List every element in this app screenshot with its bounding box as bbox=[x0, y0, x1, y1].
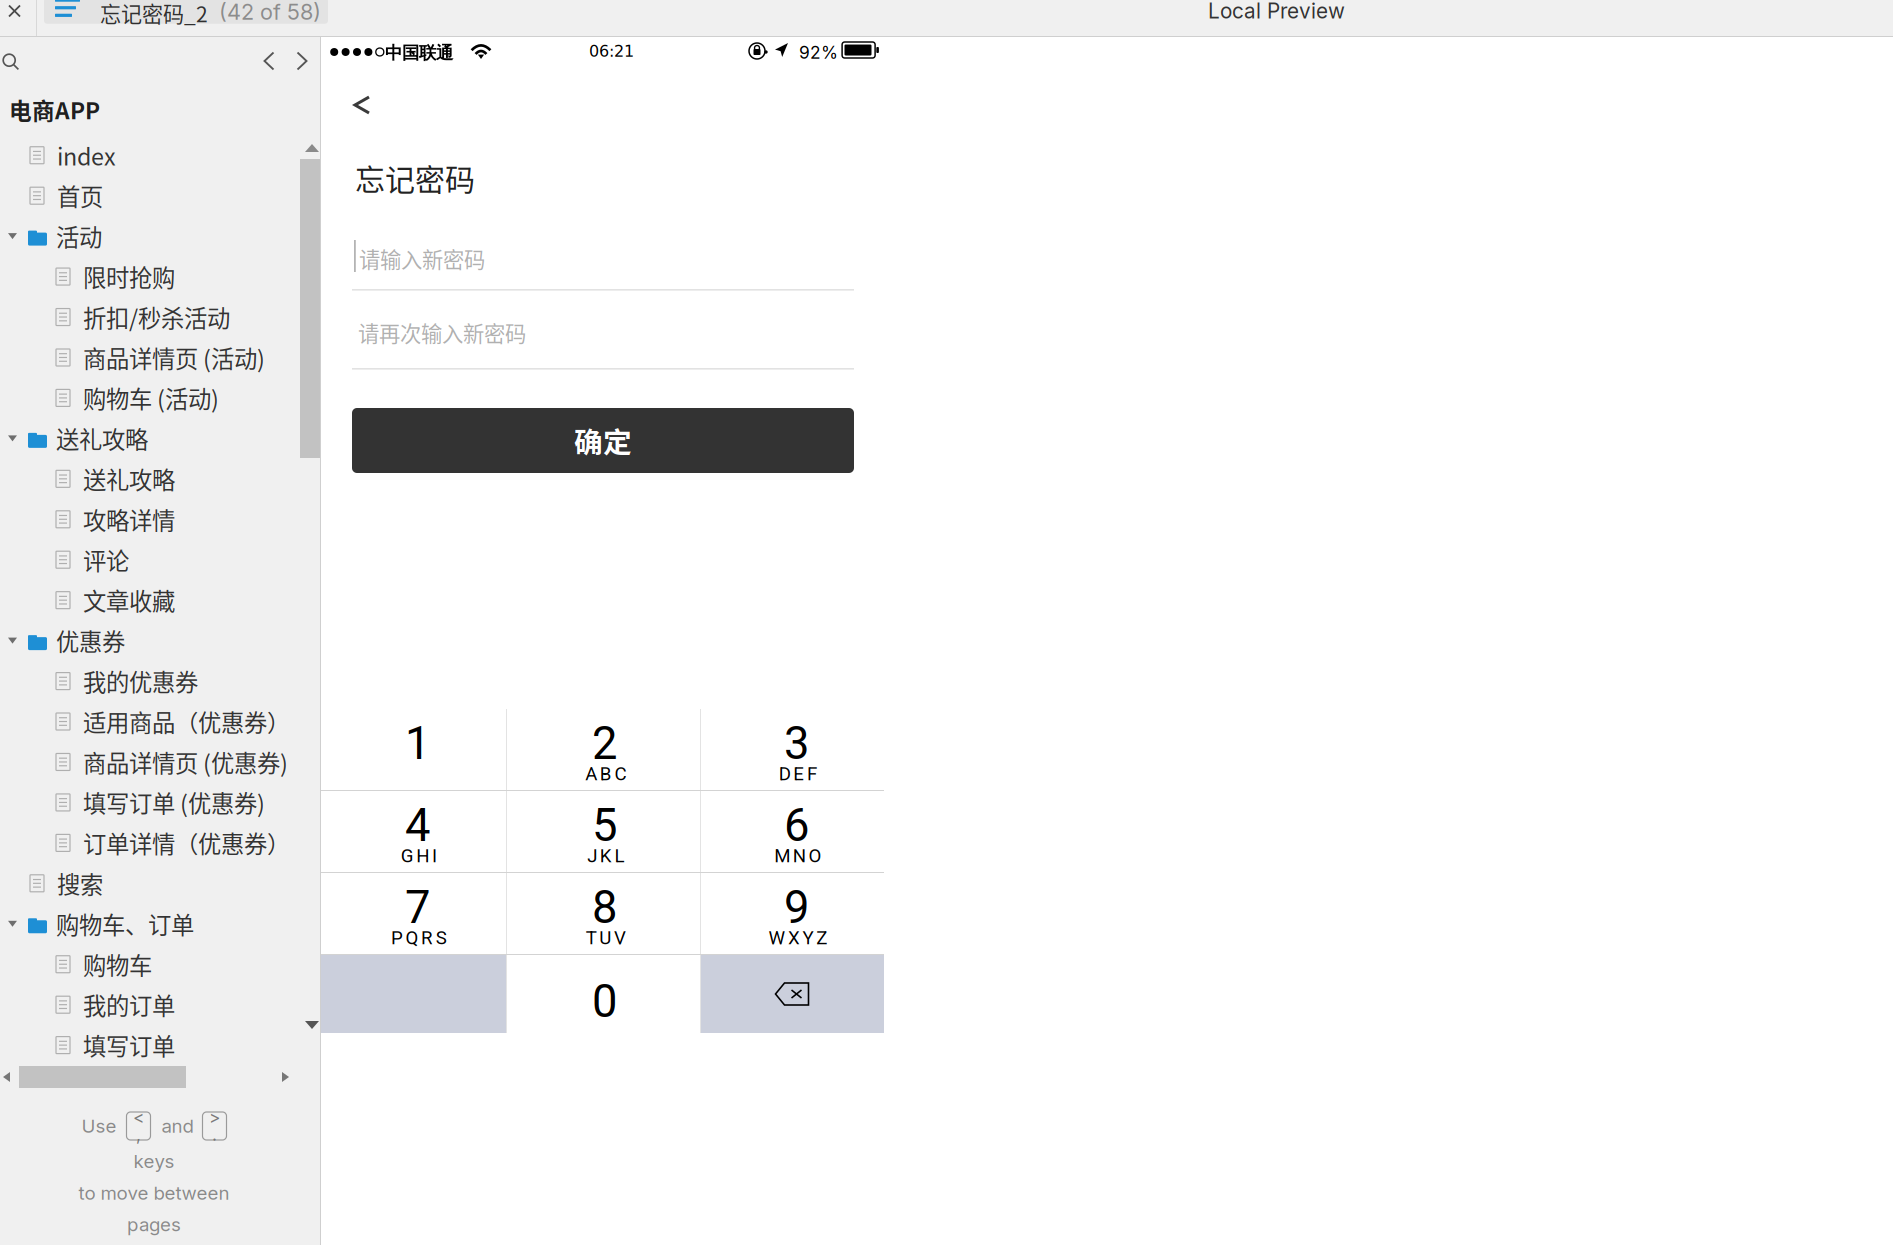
button[interactable]: 首页 bbox=[0, 175, 320, 216]
staticText: 攻略详情 bbox=[83, 502, 175, 536]
staticText: 确定 bbox=[574, 420, 632, 461]
staticText: > bbox=[209, 1107, 220, 1128]
button[interactable]: 限时抢购 bbox=[0, 256, 320, 297]
button[interactable]: 送礼攻略 bbox=[0, 418, 320, 459]
button[interactable]: 活动 bbox=[0, 216, 320, 256]
button[interactable]: 4 bbox=[321, 791, 506, 872]
staticText: 6 bbox=[784, 799, 809, 852]
staticText: 商品详情页 (优惠券) bbox=[83, 745, 288, 779]
staticText: 适用商品（优惠券） bbox=[83, 705, 290, 738]
button[interactable]: 5 bbox=[507, 791, 700, 872]
button[interactable]: Back bbox=[334, 82, 390, 128]
button[interactable]: Search bbox=[0, 46, 27, 78]
staticText: 请输入新密码 bbox=[359, 243, 485, 274]
staticText: , bbox=[136, 1124, 141, 1145]
button[interactable]: Delete bbox=[701, 955, 884, 1033]
staticText: ABC bbox=[585, 763, 626, 785]
button[interactable]: 购物车 (活动) bbox=[0, 378, 320, 418]
button[interactable]: 优惠券 bbox=[0, 620, 320, 661]
button[interactable]: 攻略详情 bbox=[0, 499, 320, 539]
staticText: 5 bbox=[592, 799, 617, 852]
staticText: 3 bbox=[784, 717, 809, 770]
staticText: (42 of 58) bbox=[219, 0, 321, 25]
button[interactable]: Close bbox=[0, 0, 29, 22]
staticText: 送礼攻略 bbox=[83, 462, 175, 496]
staticText: 06:21 bbox=[589, 42, 634, 61]
staticText: 8 bbox=[592, 881, 617, 934]
button[interactable]: 填写订单 (优惠券) bbox=[0, 782, 320, 823]
button[interactable]: 送礼攻略 bbox=[0, 459, 320, 499]
staticText: 购物车 bbox=[83, 947, 152, 981]
staticText: 2 bbox=[592, 717, 617, 770]
staticText: . bbox=[212, 1124, 217, 1145]
staticText: keys bbox=[133, 1150, 174, 1173]
button[interactable]: 搜索 bbox=[0, 863, 320, 904]
button[interactable]: 2 bbox=[507, 709, 700, 790]
staticText: 我的订单 bbox=[83, 988, 175, 1022]
staticText: 商品详情页 (活动) bbox=[83, 341, 265, 374]
button[interactable]: 0 bbox=[507, 955, 700, 1033]
button[interactable]: 我的订单 bbox=[0, 984, 320, 1025]
staticText: 购物车 (活动) bbox=[83, 381, 219, 415]
button[interactable]: 适用商品（优惠券） bbox=[0, 701, 320, 742]
staticText: TUV bbox=[586, 927, 626, 949]
staticText: WXYZ bbox=[768, 927, 827, 949]
button[interactable]: 6 bbox=[701, 791, 884, 872]
staticText: DEF bbox=[779, 763, 817, 785]
staticText: 忘记密码 bbox=[355, 156, 475, 199]
button[interactable]: 我的优惠券 bbox=[0, 661, 320, 701]
staticText: 1 bbox=[405, 717, 430, 770]
button[interactable]: 评论 bbox=[0, 539, 320, 580]
staticText: 中国联通 bbox=[385, 42, 453, 64]
button[interactable]: 购物车 bbox=[0, 944, 320, 984]
button[interactable]: index bbox=[0, 135, 320, 175]
button[interactable]: 3 bbox=[701, 709, 884, 790]
button[interactable]: 确定 bbox=[352, 408, 854, 473]
button[interactable]: Previous page bbox=[255, 46, 283, 76]
button[interactable]: 订单详情（优惠券） bbox=[0, 823, 320, 863]
button[interactable]: 忘记密码_2 bbox=[44, 0, 328, 26]
staticText: 填写订单 (优惠券) bbox=[83, 785, 265, 819]
staticText: to move between bbox=[78, 1182, 229, 1204]
staticText: 电商APP bbox=[9, 93, 100, 126]
button[interactable]: 折扣/秒杀活动 bbox=[0, 297, 320, 337]
button[interactable]: 7 bbox=[321, 873, 506, 954]
staticText: and bbox=[161, 1115, 193, 1137]
staticText: MNO bbox=[774, 845, 821, 867]
button[interactable]: Next page bbox=[288, 46, 316, 76]
staticText: 我的优惠券 bbox=[83, 664, 198, 698]
staticText: 9 bbox=[784, 881, 809, 934]
staticText: 购物车、订单 bbox=[56, 907, 194, 941]
staticText: < bbox=[133, 1107, 144, 1128]
staticText: Use bbox=[81, 1115, 116, 1137]
button[interactable]: 商品详情页 (活动) bbox=[0, 337, 320, 378]
button[interactable]: 商品详情页 (优惠券) bbox=[0, 742, 320, 782]
staticText: 0 bbox=[592, 975, 617, 1028]
staticText: 请再次输入新密码 bbox=[358, 317, 526, 348]
staticText: 折扣/秒杀活动 bbox=[83, 300, 230, 334]
staticText: pages bbox=[127, 1213, 181, 1236]
staticText: 填写订单 bbox=[83, 1028, 175, 1062]
staticText: Local Preview bbox=[1208, 0, 1345, 24]
staticText: 92% bbox=[799, 42, 838, 63]
button[interactable]: 文章收藏 bbox=[0, 580, 320, 620]
button[interactable]: 填写订单 bbox=[0, 1025, 320, 1065]
staticText: GHI bbox=[401, 845, 437, 867]
staticText: 优惠券 bbox=[56, 624, 125, 657]
button[interactable]: 9 bbox=[701, 873, 884, 954]
staticText: 7 bbox=[405, 881, 430, 934]
button[interactable]: 1 bbox=[321, 709, 506, 790]
staticText: 忘记密码_2 bbox=[100, 0, 208, 28]
button[interactable]: 购物车、订单 bbox=[0, 904, 320, 944]
staticText: 4 bbox=[405, 799, 430, 852]
staticText: JKL bbox=[587, 845, 624, 867]
staticText: 活动 bbox=[56, 219, 102, 253]
staticText: 送礼攻略 bbox=[56, 421, 148, 455]
staticText: 评论 bbox=[83, 543, 129, 577]
staticText: 首页 bbox=[57, 179, 103, 213]
staticText: 搜索 bbox=[57, 866, 103, 900]
staticText: 限时抢购 bbox=[83, 260, 175, 293]
button[interactable]: 8 bbox=[507, 873, 700, 954]
staticText: 订单详情（优惠券） bbox=[83, 826, 290, 860]
